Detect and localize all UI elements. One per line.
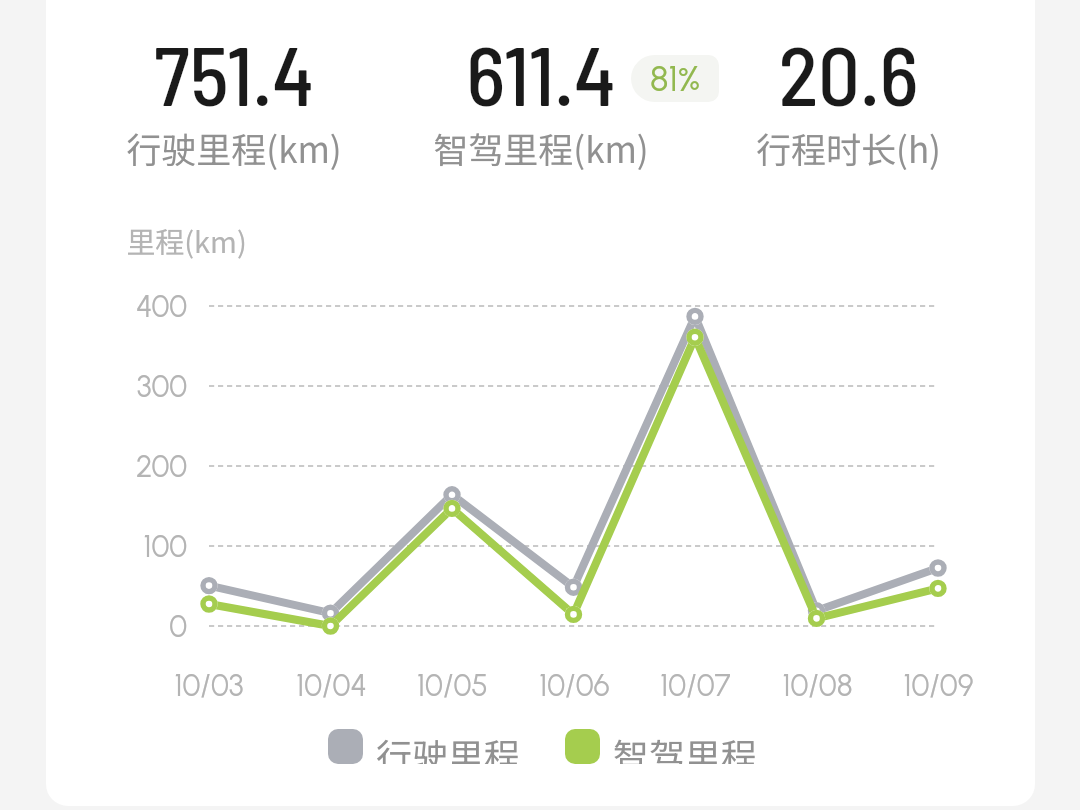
button[interactable]: 20.6 (678, 18, 1018, 168)
staticText: 611.4 (466, 23, 616, 122)
staticText: 100 (143, 528, 187, 564)
staticText: 行程时长(h) (756, 122, 941, 173)
staticText: 10/03 (174, 667, 244, 703)
staticText: 10/04 (296, 667, 367, 703)
staticText: 智驾里程(km) (433, 122, 649, 173)
staticText: 10/07 (660, 667, 731, 703)
staticText: 400 (136, 288, 187, 324)
button[interactable]: 611.4 (371, 18, 711, 168)
staticText: 200 (135, 448, 187, 484)
staticText: 10/06 (539, 667, 610, 703)
staticText: 10/08 (782, 667, 853, 703)
staticText: 81% (650, 58, 701, 100)
staticText: 行驶里程 (376, 728, 521, 764)
staticText: 300 (136, 368, 187, 404)
button[interactable]: 751.4 (64, 18, 404, 168)
staticText: 0 (169, 608, 187, 644)
staticText: 10/09 (903, 667, 974, 703)
staticText: 10/05 (417, 667, 488, 703)
button[interactable]: 行驶里程 (328, 728, 521, 764)
staticText: 里程(km) (126, 219, 247, 261)
staticText: 行驶里程(km) (126, 122, 342, 173)
staticText: 20.6 (778, 23, 919, 122)
button[interactable]: 81% (631, 55, 719, 102)
staticText: 751.4 (154, 23, 314, 122)
button[interactable]: 智驾里程 (565, 728, 758, 764)
staticText: 智驾里程 (613, 728, 758, 764)
